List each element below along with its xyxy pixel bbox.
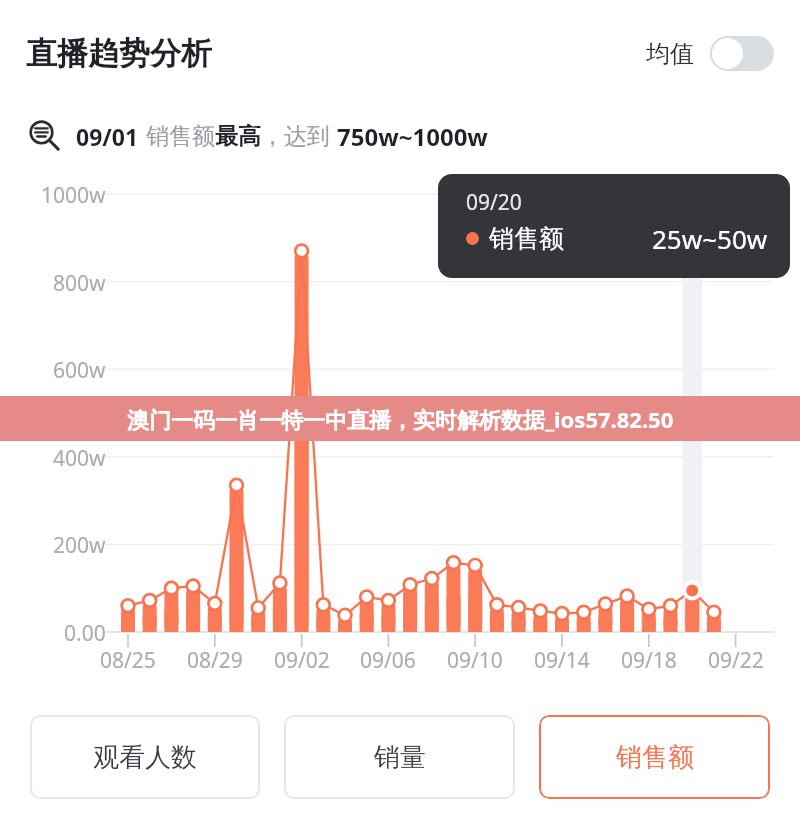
staticText: 达到	[284, 122, 330, 151]
staticText: 澳门一码一肖一特一中直播，实时解析数据_ios57.82.50	[127, 404, 674, 434]
staticText: ，	[261, 122, 284, 151]
staticText: 09/06	[360, 646, 416, 675]
staticText: 08/25	[100, 646, 156, 675]
staticText: 25w~50w	[652, 221, 768, 256]
staticText: 400w	[53, 444, 106, 473]
staticText: 800w	[53, 269, 106, 298]
button[interactable]: 销售额	[539, 715, 770, 799]
staticText: 200w	[53, 531, 106, 560]
staticText: 观看人数	[93, 741, 197, 774]
button[interactable]: 09/20	[438, 174, 790, 278]
staticText: 销售额	[146, 122, 215, 151]
staticText: 09/14	[534, 646, 590, 675]
staticText: 600w	[53, 356, 106, 385]
button[interactable]: 销量	[284, 715, 515, 799]
staticText: 750w~1000w	[337, 120, 488, 153]
staticText: 09/22	[708, 646, 764, 675]
staticText: 09/02	[274, 646, 330, 675]
staticText: 08/29	[187, 646, 243, 675]
button[interactable]: 观看人数	[30, 715, 260, 799]
staticText: 09/18	[621, 646, 677, 675]
staticText: 销售额	[489, 223, 564, 254]
staticText: 销量	[374, 741, 426, 774]
staticText: 09/10	[447, 646, 503, 675]
staticText: 最高	[215, 122, 261, 151]
staticText: 均值	[646, 39, 694, 69]
button[interactable]: Toggle average line	[710, 36, 774, 71]
staticText: 直播趋势分析	[26, 34, 212, 73]
staticText: 销售额	[616, 741, 694, 774]
staticText: 1000w	[41, 181, 106, 210]
staticText: 09/01	[76, 121, 139, 152]
staticText: 0.00	[64, 619, 106, 648]
staticText: 09/20	[466, 188, 522, 217]
